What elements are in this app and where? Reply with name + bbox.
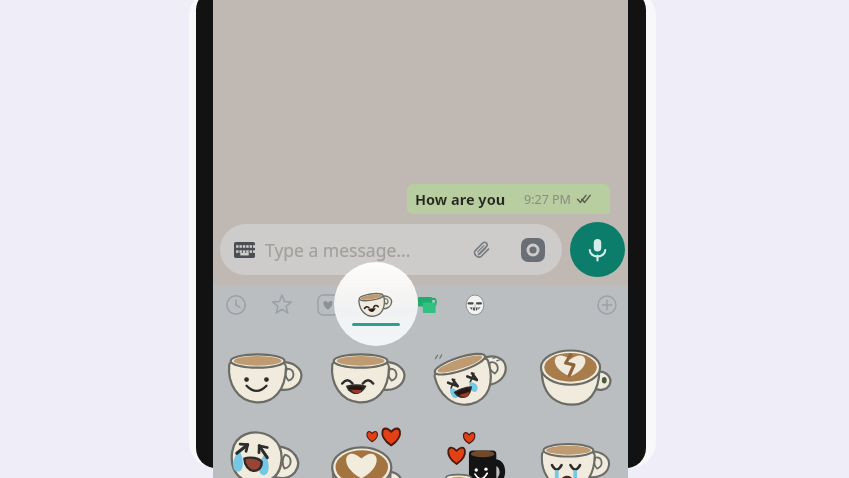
button[interactable]: Recently used bbox=[221, 290, 251, 320]
button[interactable]: Sad coffee cup bbox=[524, 417, 628, 478]
button[interactable]: Crying coffee cup bbox=[213, 417, 316, 478]
button[interactable]: Love latte bbox=[316, 417, 420, 478]
button[interactable]: Starred stickers bbox=[267, 290, 297, 320]
button[interactable]: Heart sticker pack bbox=[313, 290, 343, 320]
button[interactable]: Add sticker pack bbox=[592, 290, 622, 320]
button[interactable]: Coffee sticker pack bbox=[334, 262, 418, 346]
button[interactable]: Attach file bbox=[466, 234, 498, 266]
button[interactable]: Money sticker pack bbox=[413, 290, 443, 320]
button[interactable]: Coffee sticker pack bbox=[359, 289, 391, 321]
button[interactable]: Laughing coffee cup bbox=[316, 336, 420, 417]
staticText: Type a message... bbox=[265, 238, 411, 262]
button[interactable]: Face sticker pack bbox=[460, 290, 490, 320]
button[interactable]: How are you bbox=[407, 184, 610, 214]
button[interactable]: Camera bbox=[517, 234, 549, 266]
button[interactable]: Smiling coffee cup bbox=[213, 336, 316, 417]
button[interactable]: Coffee couple bbox=[420, 417, 524, 478]
button[interactable]: Broken heart latte bbox=[524, 336, 628, 417]
button[interactable]: Record voice message bbox=[570, 222, 625, 277]
button[interactable]: Type a message... bbox=[220, 224, 562, 275]
button[interactable]: Laughing crying coffee cup bbox=[420, 336, 524, 417]
staticText: 9:27 PM bbox=[524, 191, 571, 208]
staticText: How are you bbox=[415, 189, 506, 209]
